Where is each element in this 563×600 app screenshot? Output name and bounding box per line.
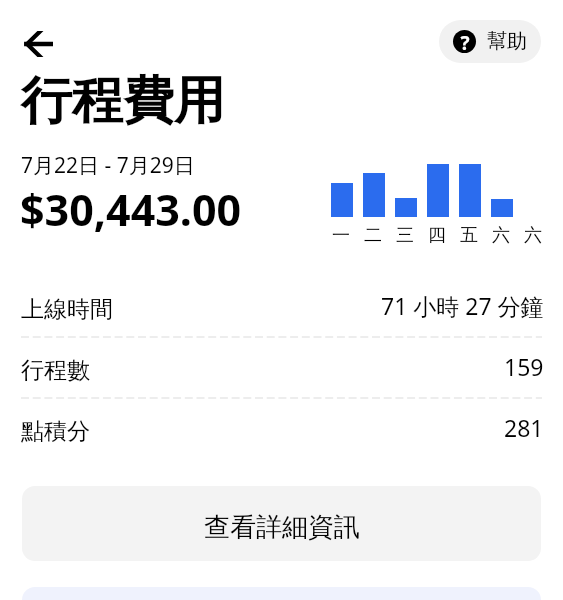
staticText: 查看詳細資訊 <box>204 511 360 544</box>
staticText: 上線時間 <box>21 295 113 324</box>
staticText: ? <box>460 30 470 53</box>
staticText: 六 <box>490 224 512 247</box>
staticText: 行程費用 <box>21 69 225 133</box>
staticText: 三 <box>394 224 416 247</box>
staticText: 7月22日 - 7月29日 <box>21 151 195 180</box>
button[interactable]: Back <box>9 18 61 70</box>
button[interactable]: 查看詳細資訊 <box>22 486 541 561</box>
staticText: 71 小時 27 分鐘 <box>381 290 544 321</box>
staticText: 281 <box>504 412 544 443</box>
button[interactable]: 行程數 <box>0 348 563 409</box>
staticText: 159 <box>504 351 544 382</box>
staticText: $30,443.00 <box>20 180 242 239</box>
button[interactable]: 點積分 <box>0 409 563 470</box>
staticText: 五 <box>458 224 480 247</box>
staticText: 六 <box>522 224 544 247</box>
staticText: 四 <box>426 224 448 247</box>
staticText: 幫助 <box>487 29 527 54</box>
button[interactable]: 上線時間 <box>0 287 563 348</box>
staticText: 二 <box>362 224 384 247</box>
staticText: 行程數 <box>21 356 90 385</box>
button[interactable]: ? <box>439 20 541 63</box>
staticText: 點積分 <box>21 417 90 446</box>
staticText: 一 <box>330 224 352 247</box>
